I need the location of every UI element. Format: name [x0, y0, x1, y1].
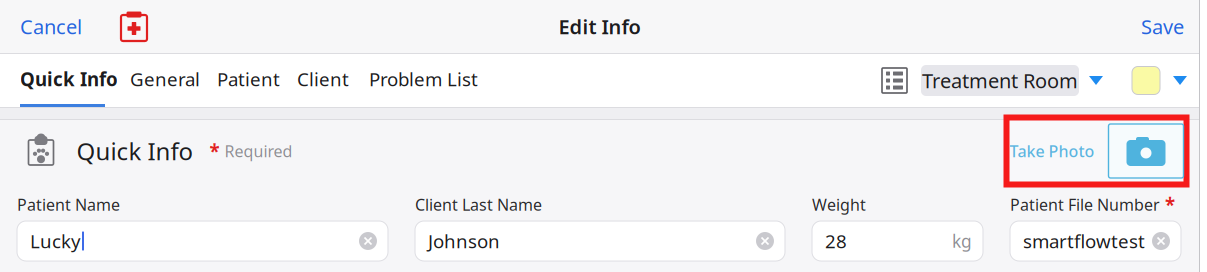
staticText: Take Photo: [1009, 140, 1094, 162]
staticText: Patient File Number: [1010, 194, 1160, 215]
button[interactable]: Patient Name: [17, 221, 388, 261]
button[interactable]: Choose colour: [1173, 76, 1187, 85]
staticText: Client Last Name: [415, 194, 542, 215]
staticText: Johnson: [428, 229, 500, 253]
button[interactable]: Client Last Name: [415, 221, 785, 261]
staticText: Quick Info: [76, 135, 193, 167]
staticText: *: [1165, 192, 1175, 217]
button[interactable]: Client: [297, 54, 369, 107]
staticText: kg: [952, 229, 972, 252]
button[interactable]: Weight: [812, 221, 983, 261]
staticText: Patient: [217, 67, 280, 91]
button[interactable]: Quick Info: [0, 54, 130, 107]
button[interactable]: General: [130, 54, 217, 107]
button[interactable]: Take Photo: [1009, 140, 1094, 162]
staticText: Required: [224, 140, 292, 162]
button[interactable]: List view: [881, 67, 908, 94]
button[interactable]: Cancel: [0, 0, 102, 53]
button[interactable]: Choose location: [1089, 76, 1103, 85]
button[interactable]: Patient File Number: [1010, 221, 1181, 261]
staticText: Quick Info: [20, 67, 118, 91]
button[interactable]: Patient: [217, 54, 297, 107]
staticText: Treatment Room: [922, 67, 1078, 94]
staticText: Save: [1141, 13, 1184, 40]
button[interactable]: Colour tag: [1132, 66, 1160, 94]
staticText: General: [130, 67, 200, 91]
staticText: Problem List: [369, 67, 478, 91]
button[interactable]: Problem List: [369, 54, 470, 107]
staticText: Lucky: [30, 229, 81, 253]
staticText: Edit Info: [558, 13, 640, 40]
button[interactable]: Take Photo: [1108, 124, 1183, 178]
staticText: Cancel: [20, 13, 82, 40]
staticText: smartflowtest: [1023, 229, 1145, 253]
button[interactable]: Save: [1119, 0, 1199, 53]
button[interactable]: Treatment Room: [921, 65, 1079, 96]
button[interactable]: Medical Record: [112, 0, 156, 53]
staticText: Patient Name: [17, 194, 120, 215]
staticText: Client: [297, 67, 349, 91]
staticText: *: [209, 139, 219, 163]
staticText: Weight: [812, 194, 866, 215]
staticText: 28: [825, 229, 847, 253]
